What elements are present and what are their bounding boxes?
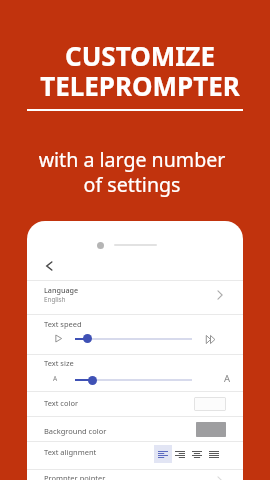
button[interactable] <box>27 280 243 314</box>
staticText: Language <box>44 285 79 295</box>
button[interactable]: Align right <box>171 445 189 463</box>
staticText: Background color <box>44 426 107 436</box>
button[interactable]: Align left <box>154 445 172 463</box>
button[interactable]: Justify <box>205 445 223 463</box>
staticText: Text speed <box>44 319 82 329</box>
staticText: Text size <box>44 358 74 368</box>
staticText: A <box>53 374 58 383</box>
button[interactable] <box>27 416 243 441</box>
staticText: Text color <box>44 398 79 408</box>
button[interactable]: Back <box>36 253 62 279</box>
staticText: Prompter pointer <box>44 473 106 480</box>
staticText: CUSTOMIZE TELEPROMPTER <box>5 38 270 103</box>
button[interactable]: Prompter pointer <box>209 470 237 480</box>
button[interactable]: Align center <box>188 445 206 463</box>
staticText: A <box>224 372 231 385</box>
button[interactable] <box>27 391 243 416</box>
staticText: English <box>44 295 66 304</box>
staticText: Text alignment <box>44 447 97 457</box>
staticText: with a large number of settings <box>0 146 267 197</box>
